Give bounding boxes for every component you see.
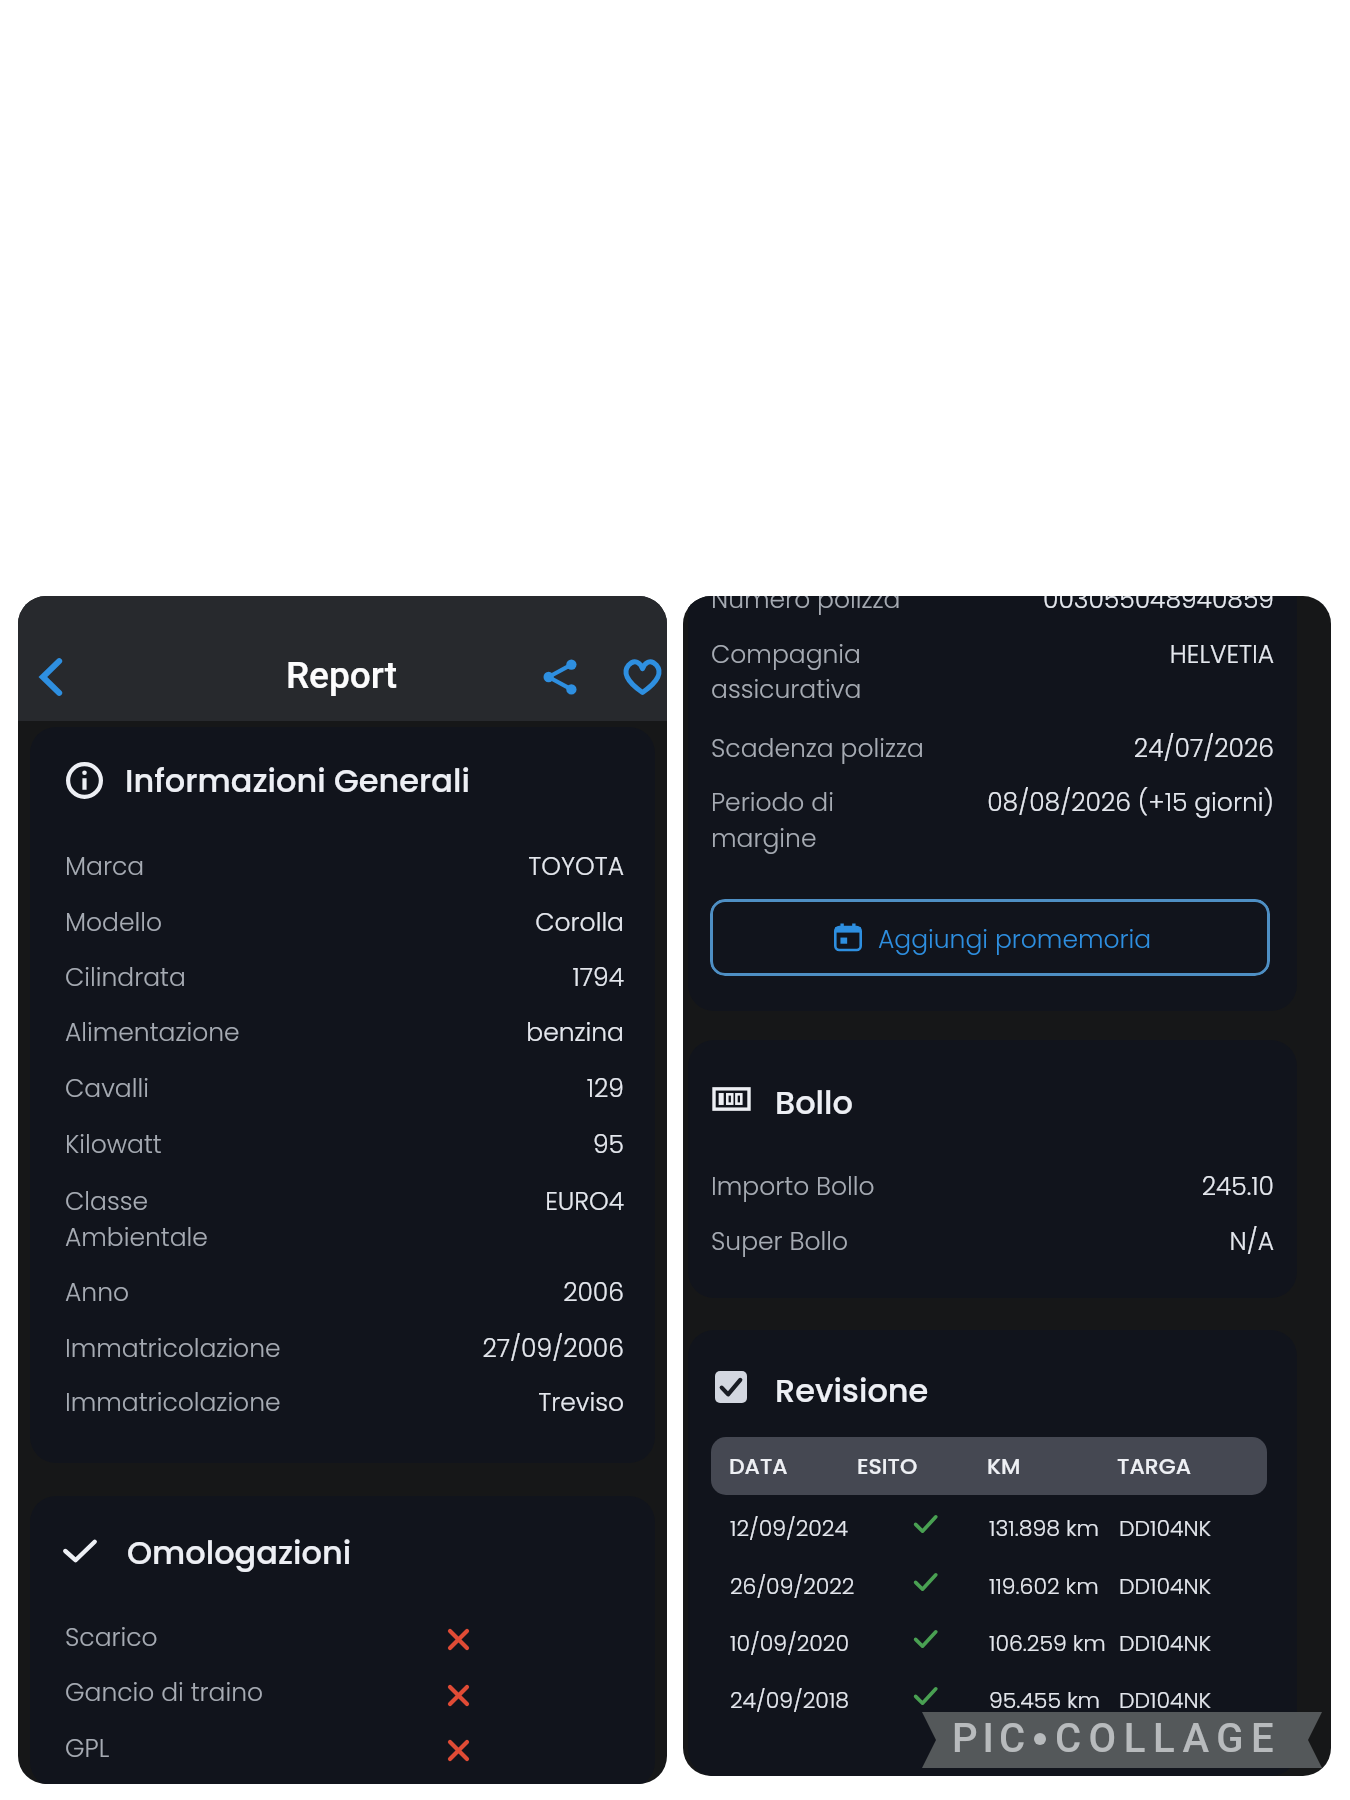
- staticText: PIC: [952, 1715, 1030, 1762]
- staticText: Alimentazione: [65, 1015, 240, 1050]
- staticText: Scadenza polizza: [711, 731, 924, 766]
- staticText: 106.259 km: [989, 1628, 1106, 1659]
- staticText: Informazioni Generali: [125, 758, 470, 803]
- staticText: 95.455 km: [989, 1685, 1101, 1716]
- staticText: Revisione: [775, 1368, 929, 1413]
- staticText: 95: [30, 1127, 624, 1162]
- staticText: Report: [286, 654, 398, 697]
- staticText: DD104NK: [1119, 1513, 1212, 1544]
- staticText: Gancio di traino: [65, 1675, 264, 1710]
- staticText: 12/09/2024: [730, 1513, 848, 1544]
- staticText: Compagnia: [711, 637, 861, 672]
- staticText: Kilowatt: [65, 1127, 162, 1162]
- staticText: TOYOTA: [30, 849, 624, 884]
- staticText: Treviso: [30, 1385, 624, 1420]
- button[interactable]: Aggiungi promemoria: [710, 899, 1270, 976]
- staticText: Immatricolazione: [65, 1385, 281, 1420]
- staticText: Super Bollo: [711, 1224, 848, 1259]
- staticText: 10/09/2020: [730, 1628, 849, 1659]
- button[interactable]: Favourite: [610, 645, 667, 709]
- staticText: DD104NK: [1119, 1571, 1212, 1602]
- staticText: COLLAGE: [1055, 1715, 1281, 1762]
- staticText: 003055048940859: [688, 596, 1274, 617]
- button[interactable]: Back: [19, 645, 83, 709]
- staticText: 1794: [30, 960, 624, 995]
- staticText: Immatricolazione: [65, 1331, 281, 1366]
- button[interactable]: Share: [528, 645, 592, 709]
- staticText: 245.10: [688, 1169, 1274, 1204]
- staticText: HELVETIA: [688, 637, 1274, 672]
- staticText: EURO4: [30, 1184, 624, 1219]
- staticText: 119.602 km: [989, 1571, 1099, 1602]
- staticText: Periodo di: [711, 785, 834, 820]
- staticText: DATA: [729, 1451, 788, 1482]
- staticText: TARGA: [1117, 1451, 1191, 1482]
- staticText: Omologazioni: [127, 1530, 352, 1575]
- staticText: Corolla: [30, 905, 624, 940]
- staticText: DD104NK: [1119, 1685, 1212, 1716]
- button[interactable]: Gancio di traino non disponibile: [434, 1671, 482, 1719]
- staticText: Modello: [65, 905, 163, 940]
- staticText: N/A: [688, 1224, 1274, 1259]
- staticText: Importo Bollo: [711, 1169, 875, 1204]
- staticText: Anno: [65, 1275, 130, 1310]
- staticText: Ambientale: [65, 1220, 208, 1255]
- staticText: 27/09/2006: [30, 1331, 624, 1366]
- staticText: Bollo: [775, 1080, 853, 1125]
- staticText: 08/08/2026 (+15 giorni): [688, 785, 1274, 820]
- staticText: 26/09/2022: [730, 1571, 855, 1602]
- staticText: Cilindrata: [65, 960, 186, 995]
- staticText: Classe: [65, 1184, 148, 1219]
- staticText: benzina: [30, 1015, 624, 1050]
- staticText: KM: [987, 1451, 1021, 1482]
- staticText: Cavalli: [65, 1071, 149, 1106]
- staticText: GPL: [65, 1731, 110, 1766]
- staticText: margine: [711, 821, 817, 856]
- staticText: ESITO: [857, 1451, 918, 1482]
- staticText: 129: [30, 1071, 624, 1106]
- staticText: 24/09/2018: [730, 1685, 850, 1716]
- staticText: 24/07/2026: [688, 731, 1274, 766]
- staticText: Marca: [65, 849, 145, 884]
- staticText: Numero polizza: [711, 596, 901, 617]
- staticText: Scarico: [65, 1620, 158, 1655]
- staticText: 131.898 km: [989, 1513, 1100, 1544]
- staticText: 2006: [30, 1275, 624, 1310]
- button[interactable]: GPL non disponibile: [434, 1726, 482, 1774]
- staticText: assicurativa: [711, 672, 862, 707]
- button[interactable]: Scarico non disponibile: [434, 1615, 482, 1663]
- staticText: DD104NK: [1119, 1628, 1212, 1659]
- staticText: Aggiungi promemoria: [878, 922, 1152, 957]
